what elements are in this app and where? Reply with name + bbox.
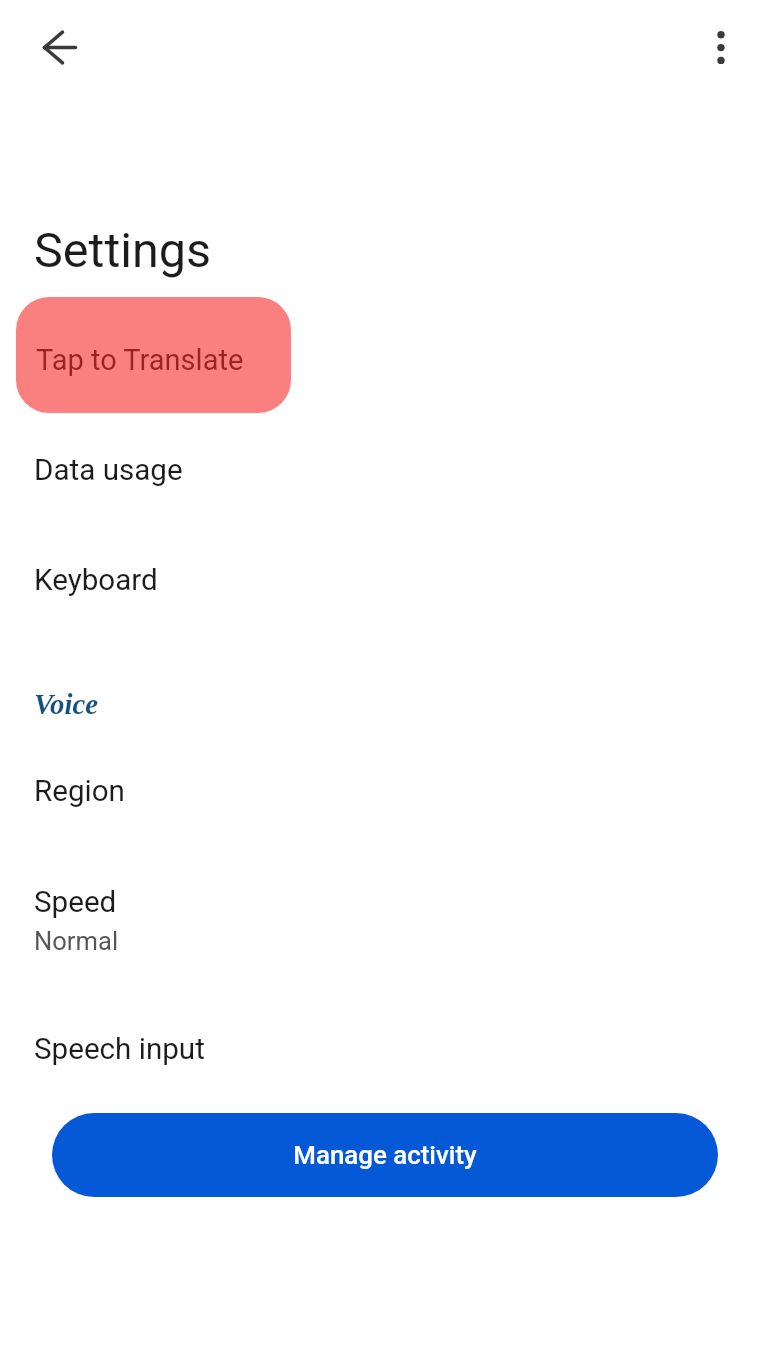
button[interactable]: More options	[696, 23, 744, 71]
button[interactable]: Keyboard	[0, 563, 768, 598]
button[interactable]: Data usage	[0, 453, 768, 488]
staticText: Keyboard	[34, 563, 158, 598]
button[interactable]: Manage activity	[52, 1113, 718, 1197]
button[interactable]: Region	[0, 774, 768, 809]
staticText: Tap to Translate	[36, 343, 244, 377]
button[interactable]: Tap to Translate	[16, 297, 291, 413]
staticText: Voice	[34, 688, 98, 720]
staticText: Normal	[34, 926, 119, 956]
staticText: Data usage	[34, 453, 183, 488]
button[interactable]: Speech input	[0, 1032, 768, 1067]
staticText: Speed	[34, 885, 117, 920]
staticText: Manage activity	[293, 1140, 477, 1170]
staticText: Settings	[34, 222, 212, 279]
button[interactable]: Speed	[0, 885, 768, 920]
staticText: Region	[34, 774, 125, 809]
staticText: Speech input	[34, 1032, 205, 1067]
button[interactable]: Navigate up	[35, 23, 83, 71]
